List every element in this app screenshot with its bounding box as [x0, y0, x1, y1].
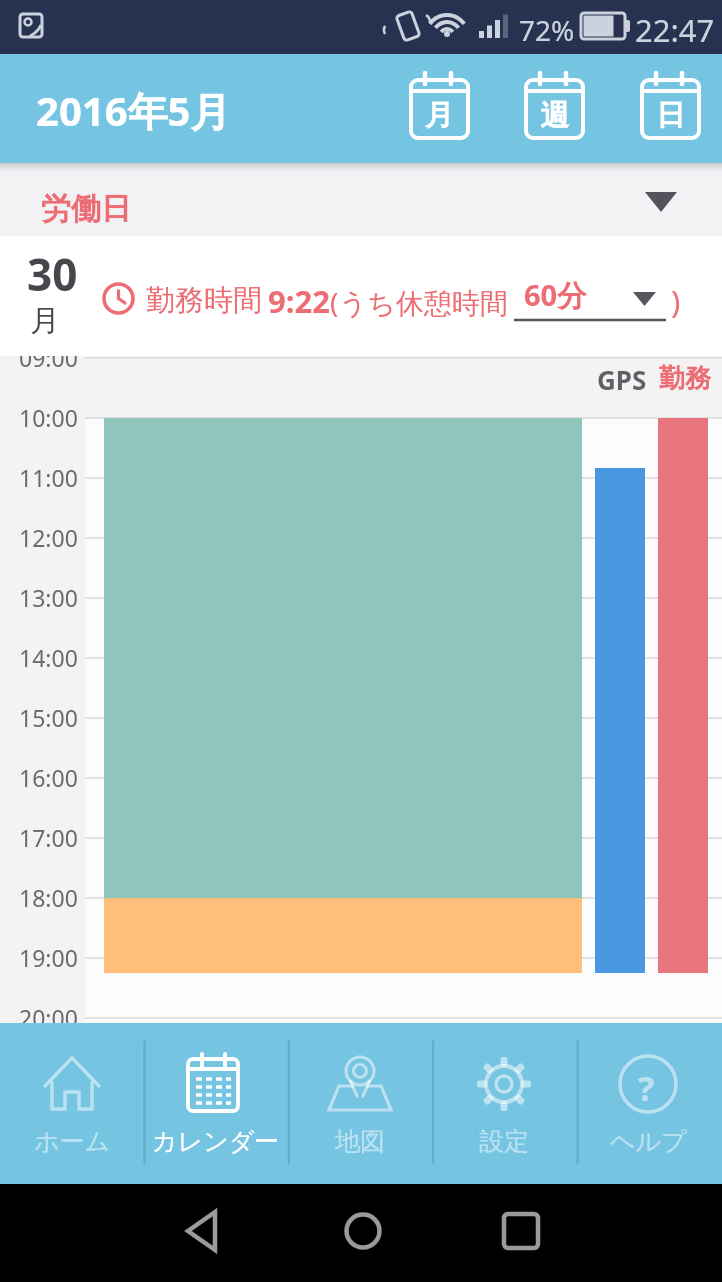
staticText: カレンダー	[152, 1126, 280, 1157]
staticText: 勤務	[659, 362, 711, 395]
staticText: 9:22	[268, 280, 330, 322]
staticText: 72%	[519, 11, 575, 49]
staticText: 15:00	[19, 702, 78, 733]
staticText: 労働日	[41, 190, 131, 228]
button[interactable]: ホーム	[0, 1023, 144, 1184]
staticText: 10:00	[19, 402, 78, 433]
staticText: GPS	[597, 362, 647, 397]
staticText: (うち休憩時間	[330, 283, 508, 321]
button[interactable]: 設定	[432, 1023, 576, 1184]
staticText: 60分	[524, 275, 587, 315]
staticText: 日	[656, 97, 685, 134]
staticText: 11:00	[19, 462, 78, 493]
staticText: 17:00	[19, 822, 78, 853]
staticText: 月	[30, 302, 60, 340]
staticText: 16:00	[19, 762, 78, 793]
button[interactable]: 60分	[512, 266, 667, 328]
button[interactable]	[176, 1202, 226, 1262]
button[interactable]: 日	[642, 73, 700, 141]
staticText: 12:00	[19, 522, 78, 553]
button[interactable]: カレンダー	[144, 1023, 288, 1184]
staticText: 19:00	[19, 942, 78, 973]
button[interactable]: 月	[411, 73, 469, 141]
staticText: 週	[540, 97, 569, 134]
staticText: )	[671, 280, 681, 322]
staticText: 月	[425, 97, 454, 134]
button[interactable]: ?	[576, 1023, 720, 1184]
staticText: 18:00	[19, 882, 78, 913]
staticText: 2016年5月	[36, 83, 231, 138]
staticText: ?	[638, 1065, 655, 1111]
staticText: 設定	[479, 1126, 529, 1157]
button[interactable]	[336, 1202, 390, 1262]
staticText: 13:00	[19, 582, 78, 613]
button[interactable]: 労働日	[0, 163, 722, 236]
staticText: ホーム	[34, 1126, 111, 1157]
staticText: 20:00	[19, 1002, 78, 1023]
staticText: ヘルプ	[610, 1126, 687, 1157]
staticText: 09:00	[19, 356, 78, 373]
button[interactable]: 週	[526, 73, 584, 141]
staticText: 勤務時間	[146, 282, 262, 319]
staticText: 14:00	[19, 642, 78, 673]
staticText: 地図	[335, 1126, 385, 1157]
staticText: 30	[27, 244, 78, 304]
button[interactable]: 地図	[288, 1023, 432, 1184]
staticText: 22:47	[635, 9, 715, 51]
button[interactable]	[494, 1202, 548, 1262]
